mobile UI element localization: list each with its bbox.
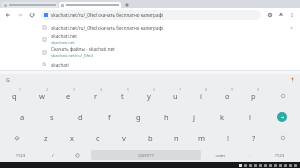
button[interactable]: Enter	[264, 106, 299, 127]
button[interactable]: Google	[4, 76, 11, 83]
button[interactable]: Taskbar item	[294, 164, 297, 167]
button[interactable]: Taskbar item	[249, 164, 252, 167]
button[interactable]: x	[59, 127, 85, 148]
staticText: e	[66, 91, 71, 101]
staticText: 3	[73, 87, 76, 92]
button[interactable]: c	[85, 127, 111, 148]
button[interactable]: Backspace	[266, 85, 299, 106]
button[interactable]: i	[188, 85, 214, 106]
button[interactable]: u	[162, 85, 188, 106]
staticText: skachati.net	[51, 33, 78, 39]
button[interactable]: a	[8, 106, 37, 127]
staticText: 0	[257, 87, 260, 92]
staticText: p	[251, 91, 256, 101]
button[interactable]: j	[180, 106, 208, 127]
staticText: 7	[179, 87, 182, 92]
button[interactable]: b	[137, 127, 163, 148]
button[interactable]: g	[124, 106, 152, 127]
staticText: t	[121, 91, 124, 101]
button[interactable]: t	[109, 85, 136, 106]
button[interactable]: o	[214, 85, 240, 106]
button[interactable]: Reload	[28, 11, 36, 19]
staticText: b	[148, 133, 153, 143]
button[interactable]: Taskbar item	[269, 164, 272, 167]
staticText: v	[122, 133, 126, 143]
button[interactable]: Taskbar item	[274, 164, 277, 167]
button[interactable]: .com	[202, 150, 238, 160]
button[interactable]: e	[55, 85, 82, 106]
staticText: ?123	[16, 152, 26, 158]
button[interactable]: skachati.net	[0, 33, 300, 46]
button[interactable]: Скачать файлы - skachati.net	[0, 46, 300, 59]
staticText: k	[220, 112, 225, 122]
staticText: skachati.net/ru/_0fed скачать бесплатно …	[51, 12, 164, 18]
button[interactable]: y	[136, 85, 162, 106]
button[interactable]: Voice input	[289, 76, 296, 83]
staticText: ?123	[275, 152, 285, 158]
button[interactable]: Back	[4, 11, 12, 19]
button[interactable]: n	[163, 127, 189, 148]
button[interactable]: Taskbar item	[254, 164, 257, 167]
staticText: z	[44, 133, 48, 143]
staticText: 2	[46, 87, 49, 92]
button[interactable]: Taskbar item	[259, 164, 262, 167]
button[interactable]	[59, 2, 121, 8]
button[interactable]: /	[40, 150, 65, 160]
button[interactable]: ?123	[1, 150, 40, 160]
button[interactable]: Extensions	[266, 11, 274, 19]
button[interactable]: s	[37, 106, 66, 127]
staticText: j	[193, 112, 195, 122]
button[interactable]: h	[152, 106, 180, 127]
button[interactable]: Taskbar item	[284, 164, 287, 167]
staticText: w	[39, 91, 45, 101]
button[interactable]	[2, 2, 58, 8]
button[interactable]: Taskbar item	[289, 164, 292, 167]
button[interactable]: Taskbar item	[264, 164, 267, 167]
button[interactable]: k	[208, 106, 236, 127]
staticText: skachati.net/ru/_0fed	[51, 53, 93, 59]
button[interactable]: More options	[288, 11, 296, 19]
staticText: skachati.net	[51, 40, 75, 46]
button[interactable]: l	[236, 106, 264, 127]
staticText: m	[198, 133, 206, 143]
staticText: ×	[290, 25, 293, 31]
staticText: QWERTY	[138, 153, 155, 158]
button[interactable]: v	[111, 127, 137, 148]
button[interactable]: !	[215, 127, 241, 148]
button[interactable]: ?123	[261, 150, 299, 160]
button[interactable]: ?	[241, 127, 267, 148]
staticText: n	[174, 133, 179, 143]
staticText: .	[249, 152, 251, 158]
button[interactable]: Forward	[16, 11, 24, 19]
staticText: 4	[100, 87, 103, 92]
button[interactable]: Profile	[277, 11, 285, 19]
staticText: ?	[252, 133, 256, 143]
staticText: Скачать файлы - skachati.net	[51, 46, 115, 52]
button[interactable]: New tab	[124, 2, 130, 8]
button[interactable]: z	[33, 127, 59, 148]
staticText: 1	[19, 87, 22, 92]
button[interactable]: d	[66, 106, 95, 127]
button[interactable]: Shift	[1, 127, 33, 148]
button[interactable]: Space	[91, 150, 201, 160]
staticText: G	[6, 76, 10, 83]
button[interactable]: p	[240, 85, 266, 106]
button[interactable]: skachati.net/ru/_0fed скачать бесплатно …	[41, 10, 261, 20]
staticText: f	[108, 112, 111, 122]
button[interactable]: Taskbar item	[279, 164, 282, 167]
button[interactable]: Emoji	[65, 150, 90, 160]
button[interactable]: Backspace	[267, 127, 299, 148]
button[interactable]: skachati.net/ru/_0fed скачать бесплатно …	[0, 22, 300, 33]
button[interactable]: w	[28, 85, 55, 106]
button[interactable]: Taskbar item	[244, 164, 247, 167]
button[interactable]: f	[95, 106, 124, 127]
button[interactable]: r	[82, 85, 109, 106]
staticText: r	[94, 91, 98, 101]
staticText: 5	[127, 87, 130, 92]
button[interactable]: skachati	[0, 59, 300, 70]
button[interactable]: Remove suggestion	[288, 25, 294, 31]
button[interactable]: q	[1, 85, 28, 106]
button[interactable]: m	[189, 127, 215, 148]
